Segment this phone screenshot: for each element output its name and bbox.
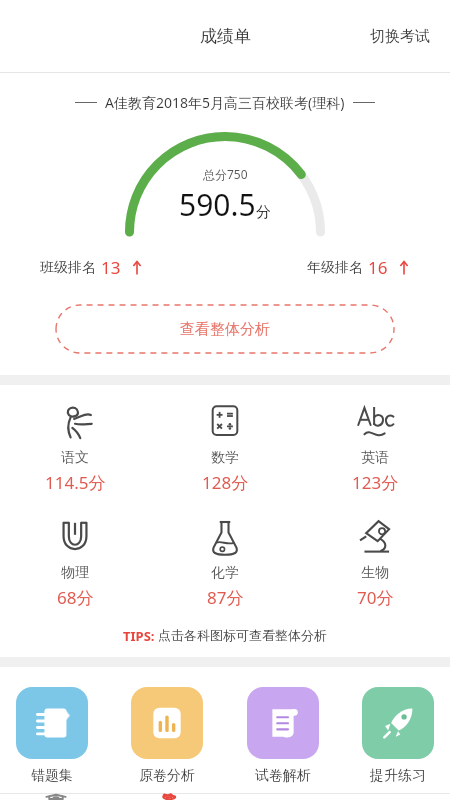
staticText: 错题集 xyxy=(31,767,73,785)
staticText: 128分 xyxy=(202,471,249,494)
staticText: 点击各科图标可查看整体分析 xyxy=(158,627,327,643)
button[interactable]: 班级排名 xyxy=(40,252,143,283)
staticText: 原卷分析 xyxy=(139,767,195,785)
staticText: 成绩单 xyxy=(200,26,251,47)
button[interactable]: 物理 xyxy=(0,514,150,613)
staticText: 年级排名 xyxy=(307,259,363,277)
staticText: 总分750 xyxy=(203,166,248,182)
staticText: 生物 xyxy=(361,564,389,582)
staticText: 查看整体分析 xyxy=(180,320,270,339)
staticText: 语文 xyxy=(61,449,89,467)
button[interactable]: 生物 xyxy=(300,514,450,613)
button[interactable]: 数学 xyxy=(150,399,300,498)
staticText: 87分 xyxy=(207,586,244,609)
staticText: 数学 xyxy=(211,449,239,467)
button[interactable]: 原卷分析 xyxy=(127,687,207,785)
staticText: 分 xyxy=(256,203,271,222)
staticText: 590.5 xyxy=(179,184,256,225)
staticText: A佳教育2018年5月高三百校联考(理科) xyxy=(105,93,345,112)
button[interactable]: 切换考试 xyxy=(350,13,450,60)
staticText: 68分 xyxy=(57,586,94,609)
staticText: 提升练习 xyxy=(370,767,426,785)
staticText: 试卷解析 xyxy=(255,767,311,785)
button[interactable]: 首页 xyxy=(0,794,112,800)
button[interactable]: 试卷解析 xyxy=(243,687,323,785)
staticText: 114.5分 xyxy=(45,471,106,494)
button[interactable]: 语文 xyxy=(0,399,150,498)
button[interactable]: 提升练习 xyxy=(358,687,438,785)
staticText: 物理 xyxy=(61,564,89,582)
staticText: 班级排名 xyxy=(40,259,96,277)
staticText: 化学 xyxy=(211,564,239,582)
button[interactable]: 英语 xyxy=(300,399,450,498)
button[interactable]: 佳分宝 xyxy=(112,794,225,800)
staticText: 16 xyxy=(368,256,388,279)
button[interactable]: 年级排名 xyxy=(307,252,410,283)
staticText: 切换考试 xyxy=(370,27,430,46)
staticText: TIPS: xyxy=(123,627,158,645)
staticText: 123分 xyxy=(352,471,399,494)
button[interactable]: 错题集 xyxy=(12,687,92,785)
staticText: 13 xyxy=(101,256,121,279)
staticText: 英语 xyxy=(361,449,389,467)
staticText: 70分 xyxy=(357,586,394,609)
button[interactable]: 查看整体分析 xyxy=(56,305,394,353)
button[interactable]: 化学 xyxy=(150,514,300,613)
